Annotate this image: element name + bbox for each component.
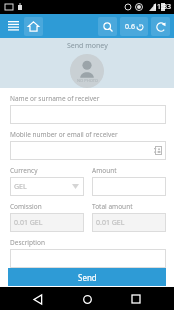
staticText: Currency xyxy=(10,166,38,175)
staticText: Mobile number or email of receiver xyxy=(10,130,118,139)
staticText: 11:33 xyxy=(153,2,171,12)
button[interactable]: Home xyxy=(24,17,43,36)
staticText: Name or surname of receiver xyxy=(10,94,100,103)
button[interactable]: Pick contact xyxy=(10,141,166,160)
staticText: 0.01 GEL xyxy=(14,218,43,228)
button[interactable]: Send xyxy=(8,268,166,286)
button[interactable]: Recents xyxy=(125,288,147,310)
button[interactable]: Home xyxy=(76,288,98,310)
button[interactable]: Refresh xyxy=(151,17,170,36)
staticText: Send money xyxy=(67,41,108,51)
staticText: NO PHOTO xyxy=(77,78,98,83)
staticText: Amount xyxy=(92,166,117,175)
button[interactable]: 0.6 xyxy=(120,17,148,36)
staticText: 0.01 GEL xyxy=(96,218,125,228)
staticText: 0.6 xyxy=(125,22,135,32)
button[interactable]: Back xyxy=(27,288,49,310)
staticText: Send xyxy=(78,272,97,283)
staticText: Comission xyxy=(10,202,42,211)
button[interactable]: Pick contact xyxy=(154,146,163,155)
button[interactable] xyxy=(92,177,166,196)
button[interactable] xyxy=(10,105,166,124)
button[interactable]: Add photo xyxy=(70,54,104,88)
button[interactable]: GEL xyxy=(10,177,84,196)
button[interactable] xyxy=(10,249,166,268)
staticText: Description xyxy=(10,238,45,247)
button[interactable]: Search xyxy=(98,17,117,36)
button[interactable]: Menu xyxy=(4,17,22,35)
staticText: Total amount xyxy=(92,202,133,211)
staticText: GEL xyxy=(14,182,27,192)
